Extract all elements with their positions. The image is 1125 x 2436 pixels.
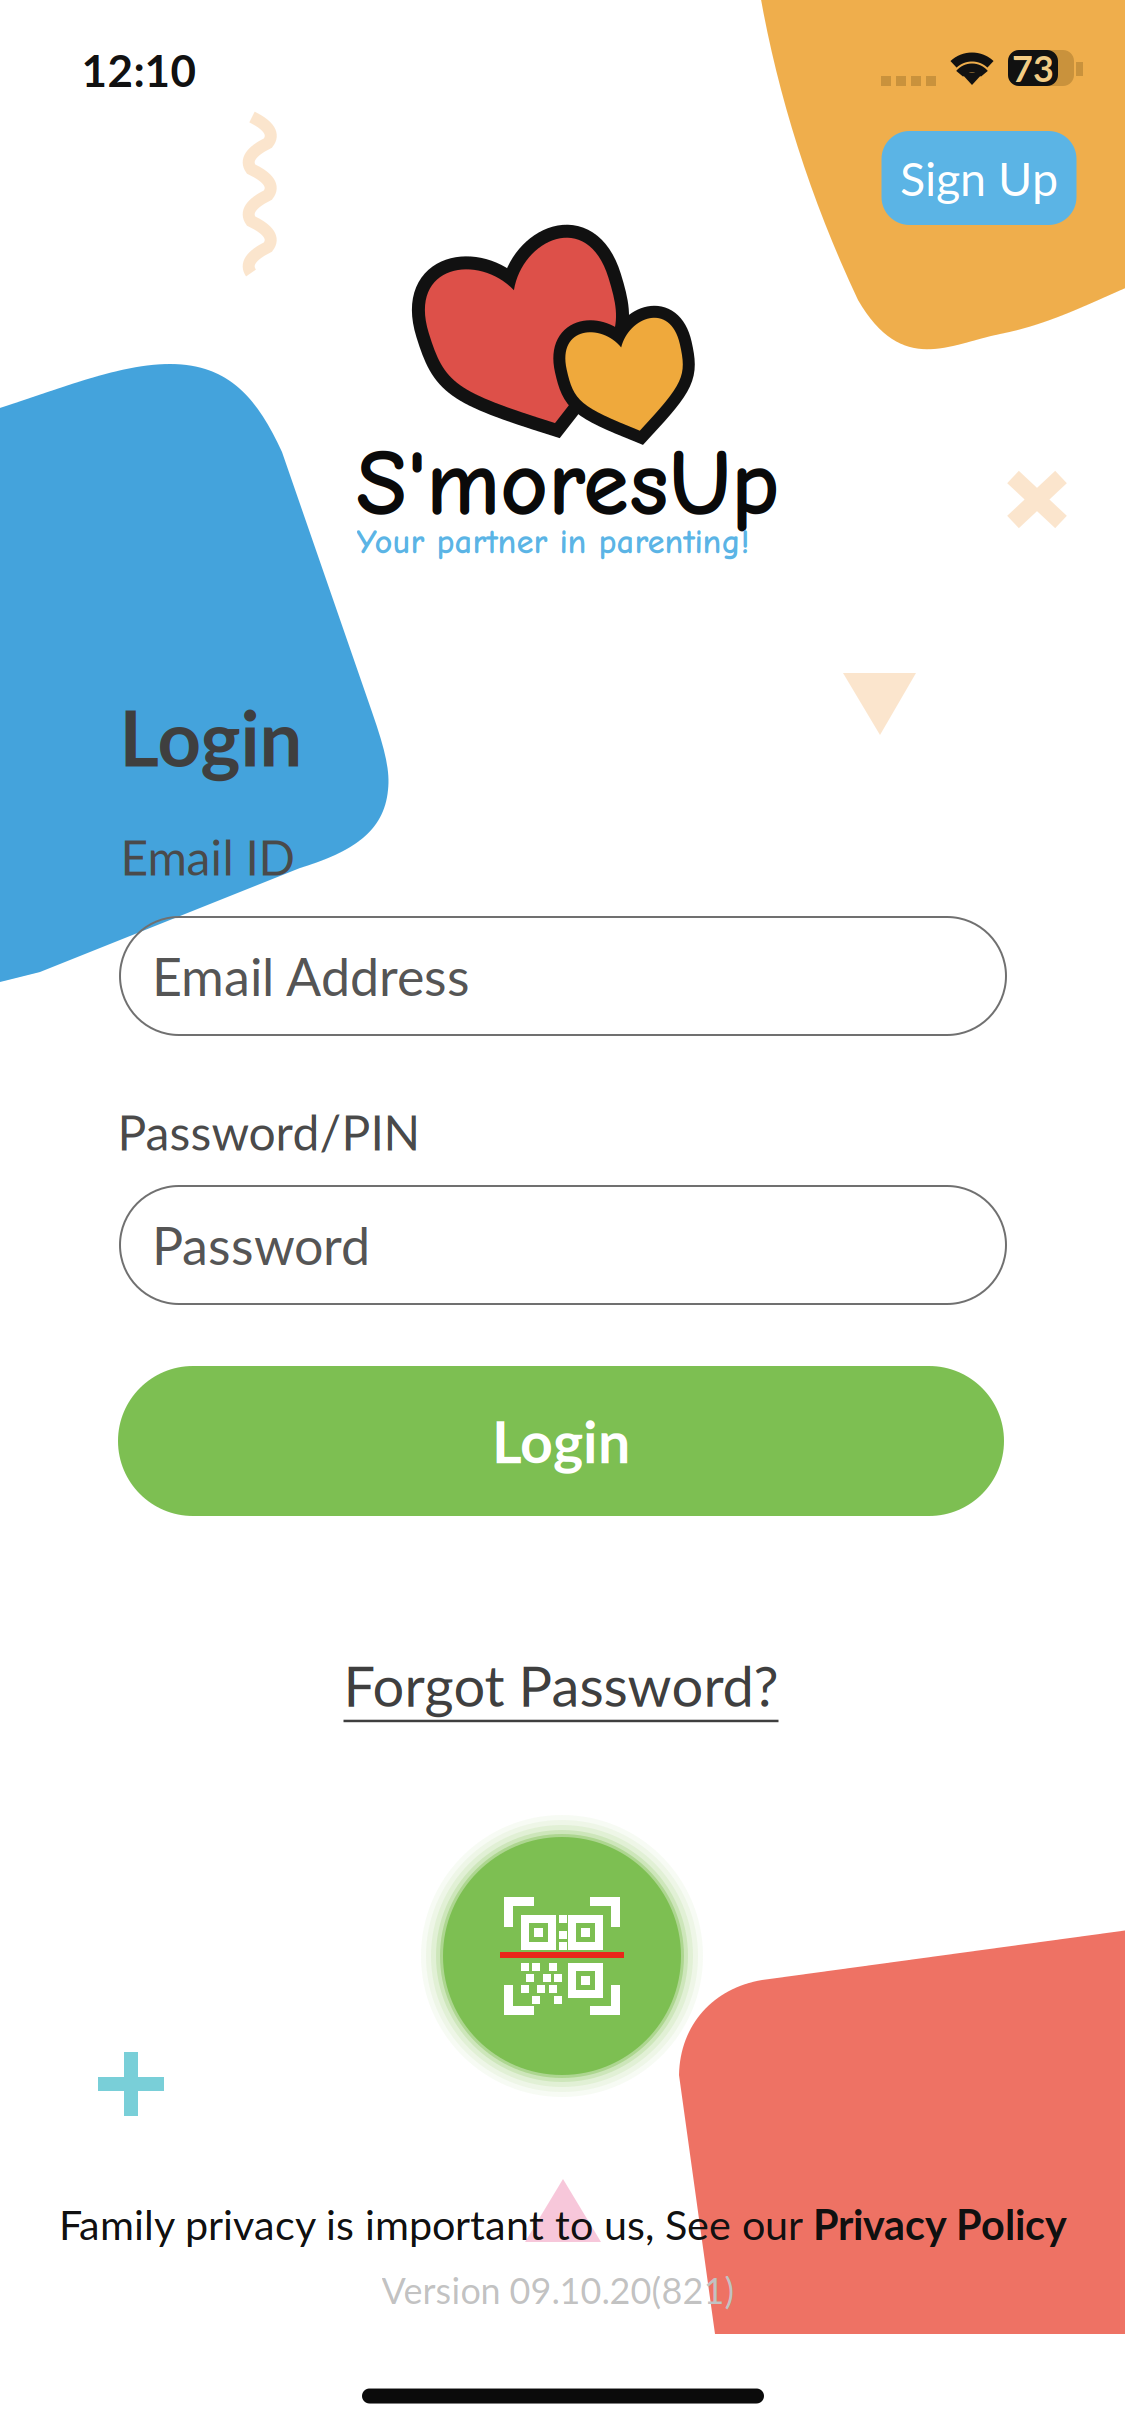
button[interactable]: Scan QR code xyxy=(421,1815,703,2097)
staticText: Email Address xyxy=(152,945,470,1007)
staticText: Password xyxy=(152,1214,370,1276)
button[interactable]: Sign Up xyxy=(881,131,1076,225)
staticText: Privacy Policy xyxy=(813,2199,1067,2249)
staticText: Password/PIN xyxy=(117,1103,420,1161)
staticText: S'moresUp xyxy=(356,430,780,538)
staticText: Your partner in parenting! xyxy=(356,522,749,562)
staticText: 73 xyxy=(1012,46,1054,90)
staticText: 12:10 xyxy=(81,44,196,96)
staticText: Email ID xyxy=(120,828,295,886)
staticText: Version 09.10.20(821) xyxy=(381,2268,734,2312)
button[interactable]: Forgot Password? xyxy=(343,1651,778,1719)
staticText: Login xyxy=(119,691,302,783)
staticText: Login xyxy=(492,1407,630,1475)
staticText: Family privacy is important to us, See o… xyxy=(59,2199,813,2249)
staticText: Sign Up xyxy=(900,150,1058,206)
staticText: Forgot Password? xyxy=(343,1651,778,1719)
button[interactable]: Login xyxy=(118,1366,1004,1516)
